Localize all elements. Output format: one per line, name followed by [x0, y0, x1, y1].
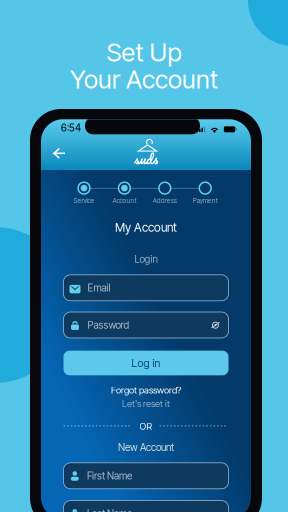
staticText: Login	[134, 253, 157, 265]
staticText: Email	[87, 282, 110, 294]
staticText: Payment	[193, 196, 218, 205]
staticText: Address	[153, 196, 177, 205]
button[interactable]: First Name	[63, 463, 228, 489]
staticText: Account	[112, 196, 136, 205]
staticText: First Name	[87, 470, 132, 482]
button[interactable]: Email	[63, 275, 228, 301]
staticText: Last Name	[87, 508, 132, 512]
staticText: New Account	[118, 441, 174, 453]
button[interactable]: Let's reset it	[41, 398, 251, 409]
staticText: My Account	[115, 220, 177, 235]
button[interactable]: Log in	[63, 351, 228, 375]
button[interactable]: Back	[41, 139, 75, 167]
staticText: suds	[134, 147, 158, 170]
staticText: Service	[73, 196, 94, 205]
staticText: Log in	[131, 356, 160, 369]
staticText: 6:54	[61, 122, 81, 134]
staticText: Let's reset it	[122, 398, 170, 409]
button[interactable]: Password	[63, 312, 228, 338]
staticText: Your Account	[70, 64, 218, 95]
button[interactable]: Last Name	[63, 501, 228, 512]
staticText: Forgot password?	[111, 384, 181, 396]
staticText: Set Up	[106, 37, 181, 68]
staticText: OR	[139, 421, 152, 432]
staticText: Password	[87, 319, 129, 331]
